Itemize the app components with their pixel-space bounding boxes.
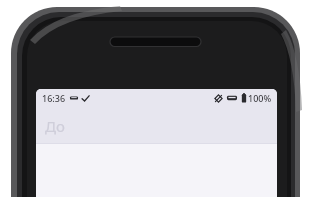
staticText: До [45,116,65,136]
staticText: 100% [248,92,272,104]
staticText: 16:36 [42,92,66,104]
